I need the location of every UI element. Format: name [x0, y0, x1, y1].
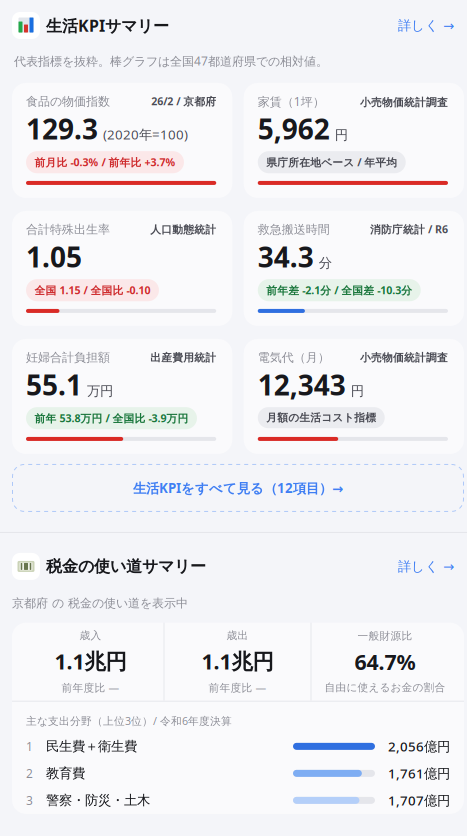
- staticText: 代表指標を抜粋。棒グラフは全国47都道府県での相対値。: [14, 53, 328, 69]
- staticText: 12,343: [258, 366, 346, 403]
- staticText: 129.3: [26, 110, 98, 147]
- staticText: 55.1: [26, 366, 82, 403]
- staticText: (2020年=100): [103, 125, 188, 143]
- staticText: 自由に使えるお金の割合: [324, 681, 445, 694]
- button[interactable]: 詳しく →: [398, 17, 454, 34]
- staticText: 円: [335, 127, 348, 143]
- staticText: 人口動態統計: [150, 223, 216, 236]
- staticText: 出産費用統計: [150, 351, 216, 364]
- staticText: 小売物価統計調査: [360, 351, 448, 364]
- staticText: 1,761億円: [388, 764, 450, 782]
- staticText: 64.7%: [354, 647, 415, 676]
- staticText: 1,707億円: [388, 791, 450, 809]
- staticText: 全国 1.15 / 全国比 -0.10: [34, 283, 150, 297]
- staticText: 電気代（月）: [258, 350, 330, 365]
- staticText: 前年差 -2.1分 / 全国差 -10.3分: [266, 283, 412, 297]
- staticText: 分: [319, 255, 332, 271]
- staticText: 教育費: [46, 765, 85, 782]
- staticText: 34.3: [258, 238, 314, 275]
- staticText: 救急搬送時間: [258, 222, 330, 237]
- staticText: 歳入: [79, 629, 101, 642]
- staticText: 合計特殊出生率: [26, 222, 110, 237]
- button[interactable]: 詳しく →: [398, 558, 454, 575]
- staticText: 前年度比 —: [61, 680, 119, 694]
- staticText: 京都府 の 税金の使い道を表示中: [12, 596, 188, 611]
- staticText: 県庁所在地ベース / 年平均: [266, 155, 397, 169]
- staticText: 3: [26, 792, 33, 808]
- staticText: 民生費＋衛生費: [46, 738, 137, 755]
- staticText: 税金の使い道サマリー: [46, 557, 206, 576]
- staticText: 一般財源比: [357, 629, 412, 642]
- staticText: 2,056億円: [388, 737, 450, 755]
- staticText: 1.05: [26, 238, 82, 275]
- staticText: 詳しく →: [398, 558, 454, 575]
- staticText: 5,962: [258, 110, 330, 147]
- staticText: 円: [351, 383, 364, 399]
- staticText: 前年 53.8万円 / 全国比 -3.9万円: [34, 411, 188, 425]
- staticText: 詳しく →: [398, 17, 454, 34]
- staticText: 小売物価統計調査: [360, 96, 448, 109]
- staticText: 万円: [87, 383, 113, 399]
- button[interactable]: 妊婦合計負担額: [12, 339, 232, 454]
- staticText: 前年度比 —: [208, 680, 266, 694]
- staticText: 家賃（1坪）: [258, 93, 325, 109]
- button[interactable]: 電気代（月）: [244, 339, 464, 454]
- staticText: 1.1兆円: [54, 647, 126, 675]
- button[interactable]: 食品の物価指数: [12, 83, 232, 198]
- staticText: 消防庁統計 / R6: [370, 222, 448, 236]
- staticText: 主な支出分野（上位3位）/ 令和6年度決算: [26, 714, 232, 728]
- staticText: 妊婦合計負担額: [26, 350, 110, 365]
- staticText: 2: [26, 765, 33, 781]
- staticText: 警察・防災・土木: [46, 792, 150, 809]
- staticText: 歳出: [226, 629, 248, 642]
- staticText: 月額の生活コスト指標: [266, 411, 376, 424]
- button[interactable]: 生活KPIをすべて見る（12項目）→: [12, 464, 464, 512]
- staticText: 生活KPIをすべて見る（12項目）→: [133, 479, 343, 497]
- button[interactable]: 救急搬送時間: [244, 211, 464, 326]
- staticText: 26/2 / 京都府: [151, 94, 216, 108]
- staticText: 1.1兆円: [201, 647, 273, 675]
- button[interactable]: 家賃（1坪）: [244, 83, 464, 198]
- staticText: 1: [26, 738, 33, 754]
- staticText: 前月比 -0.3% / 前年比 +3.7%: [34, 155, 175, 169]
- staticText: 食品の物価指数: [26, 94, 110, 109]
- staticText: 生活KPIサマリー: [46, 15, 169, 36]
- button[interactable]: 合計特殊出生率: [12, 211, 232, 326]
